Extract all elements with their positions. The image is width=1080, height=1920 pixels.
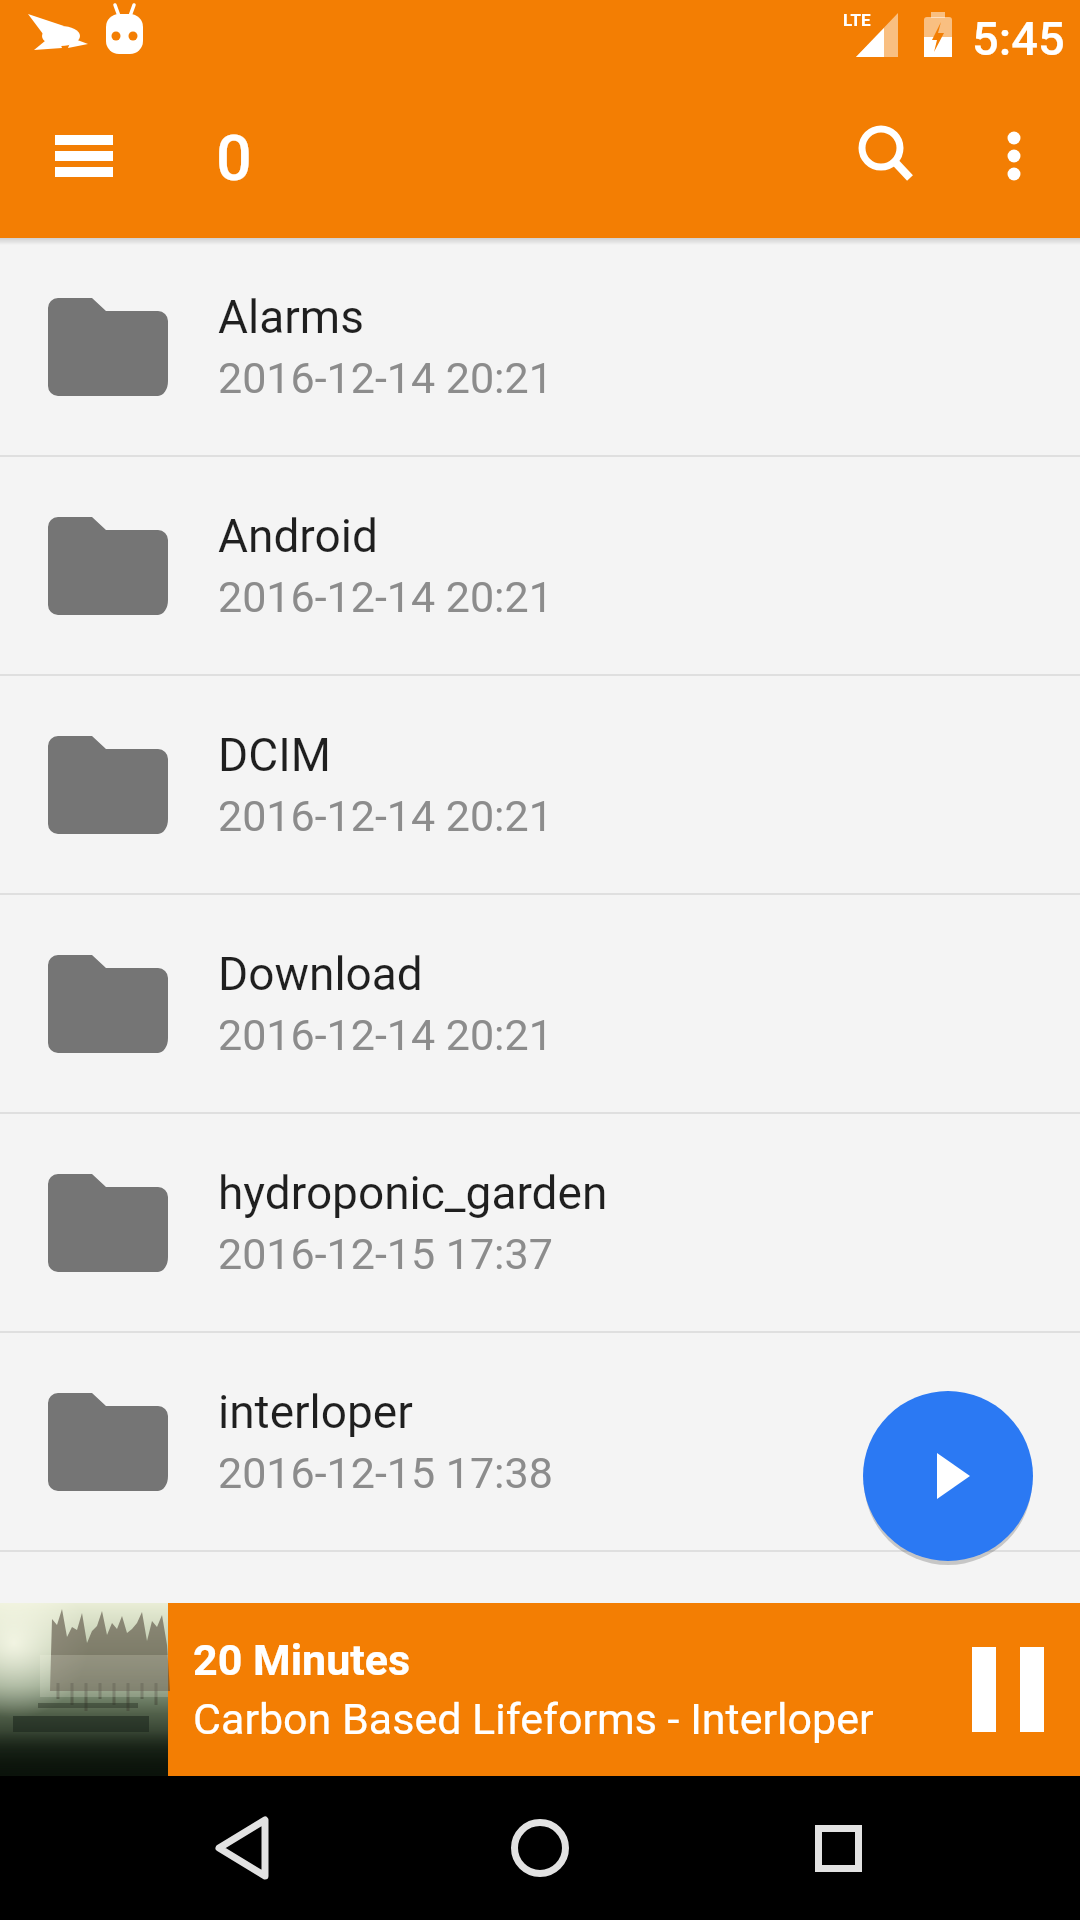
button[interactable] xyxy=(470,1778,610,1918)
staticText: Alarms xyxy=(218,290,364,344)
staticText: interloper xyxy=(218,1385,413,1439)
staticText: 2016-12-14 20:21 xyxy=(218,1010,553,1060)
button[interactable]: Download xyxy=(0,895,1080,1114)
staticText: 0 xyxy=(216,122,252,196)
button[interactable] xyxy=(837,104,937,204)
button[interactable]: Alarms xyxy=(0,238,1080,457)
staticText: Download xyxy=(218,947,423,1001)
staticText: 5:45 xyxy=(972,11,1065,66)
button[interactable]: Android xyxy=(0,457,1080,676)
staticText: LTE xyxy=(843,10,871,30)
button[interactable] xyxy=(964,106,1064,206)
button[interactable]: hydroponic_garden xyxy=(0,1114,1080,1333)
staticText: DCIM xyxy=(218,728,331,782)
button[interactable] xyxy=(768,1778,908,1918)
staticText: Carbon Based Lifeforms - Interloper xyxy=(193,1694,874,1744)
staticText: hydroponic_garden xyxy=(218,1166,608,1220)
staticText: 2016-12-14 20:21 xyxy=(218,791,553,841)
button[interactable]: DCIM xyxy=(0,676,1080,895)
button[interactable] xyxy=(936,1603,1080,1776)
staticText: 20 Minutes xyxy=(193,1635,411,1685)
staticText: Android xyxy=(218,509,378,563)
button[interactable] xyxy=(863,1391,1033,1561)
button[interactable]: 20 Minutes xyxy=(0,1603,1080,1776)
button[interactable] xyxy=(172,1778,312,1918)
button[interactable]: interloper xyxy=(0,1333,1080,1552)
staticText: 2016-12-15 17:37 xyxy=(218,1229,553,1279)
staticText: 2016-12-15 17:38 xyxy=(218,1448,553,1498)
staticText: 2016-12-14 20:21 xyxy=(218,572,553,622)
staticText: 2016-12-14 20:21 xyxy=(218,353,553,403)
button[interactable] xyxy=(34,114,134,198)
